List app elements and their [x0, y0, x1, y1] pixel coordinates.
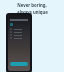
button[interactable] [10, 31, 28, 33]
button[interactable] [10, 62, 28, 66]
button[interactable] [10, 23, 13, 26]
staticText: always unique [17, 9, 48, 15]
button[interactable] [10, 34, 28, 36]
button[interactable] [10, 28, 28, 30]
staticText: Never boring, [17, 2, 47, 8]
button[interactable] [10, 37, 28, 39]
